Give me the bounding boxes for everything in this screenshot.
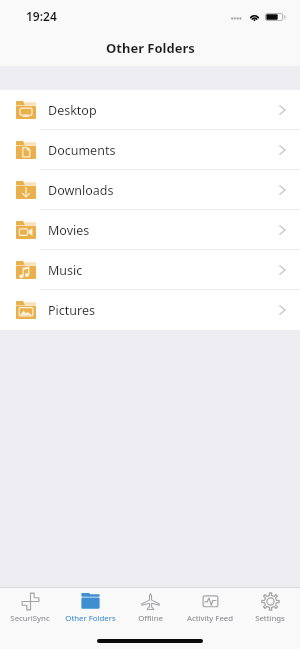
button[interactable]: Open Documents folder: [0, 130, 300, 170]
button[interactable]: Open Desktop folder: [0, 90, 300, 130]
button[interactable]: Open Downloads folder: [0, 170, 300, 210]
staticText: Music: [48, 262, 83, 279]
staticText: Movies: [48, 222, 90, 239]
staticText: Pictures: [48, 302, 95, 319]
button[interactable]: Activity Feed: [180, 593, 240, 624]
button[interactable]: Open Music folder: [0, 250, 300, 290]
staticText: SecuriSync: [10, 613, 50, 624]
staticText: Other Folders: [106, 39, 195, 57]
button[interactable]: Open Pictures folder: [0, 290, 300, 330]
button[interactable]: Settings: [240, 593, 300, 624]
staticText: 19:24: [26, 8, 57, 24]
staticText: Activity Feed: [187, 613, 233, 624]
staticText: Desktop: [48, 102, 97, 119]
staticText: Documents: [48, 142, 116, 159]
staticText: Other Folders: [65, 613, 116, 624]
staticText: Settings: [255, 613, 285, 624]
button[interactable]: Offline: [120, 593, 180, 624]
button[interactable]: SecuriSync: [0, 593, 60, 624]
button[interactable]: Open Movies folder: [0, 210, 300, 250]
staticText: Offline: [138, 613, 163, 624]
staticText: Downloads: [48, 182, 114, 199]
button[interactable]: Other Folders: [60, 593, 120, 624]
